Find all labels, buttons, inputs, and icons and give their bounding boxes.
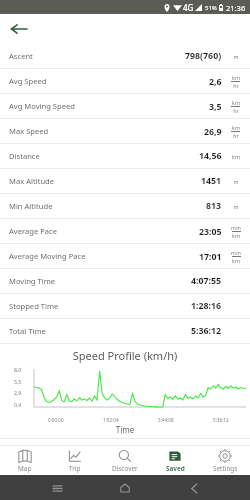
staticText: km: [232, 99, 240, 106]
staticText: Settings: [213, 464, 238, 473]
staticText: km: [232, 124, 240, 131]
button[interactable]: Trip: [50, 447, 100, 475]
staticText: km: [232, 257, 240, 264]
staticText: m: [233, 203, 239, 210]
staticText: 5:36:12: [191, 325, 222, 337]
staticText: Trip: [69, 464, 81, 473]
staticText: 14,56: [199, 150, 222, 162]
staticText: hr: [233, 107, 239, 114]
staticText: 3,5: [209, 101, 222, 113]
staticText: 1451: [201, 175, 222, 187]
staticText: Avg Speed: [9, 76, 47, 86]
staticText: 1:52:04: [103, 417, 119, 423]
staticText: 0,4: [14, 401, 22, 408]
button[interactable]: Map: [0, 447, 50, 475]
staticText: m: [233, 178, 239, 185]
staticText: Ascent: [9, 51, 33, 61]
button[interactable]: Back: [182, 476, 206, 500]
staticText: Max Speed: [9, 126, 49, 136]
staticText: Average Pace: [9, 226, 57, 236]
staticText: 5:36:12: [213, 417, 229, 423]
staticText: 798(760): [185, 50, 222, 62]
staticText: 5,5: [14, 378, 22, 385]
staticText: 23:05: [199, 226, 222, 238]
staticText: hr: [233, 132, 239, 139]
staticText: 51%: [205, 4, 217, 12]
staticText: 3:44:08: [158, 417, 174, 423]
staticText: Stopped Time: [9, 301, 59, 311]
staticText: 2,6: [209, 76, 222, 88]
staticText: Speed Profile (km/h): [0, 348, 250, 363]
staticText: min: [231, 224, 241, 231]
button[interactable]: Home: [113, 476, 137, 500]
staticText: km: [232, 153, 240, 160]
staticText: 2,9: [14, 389, 22, 396]
staticText: Total Time: [9, 326, 46, 336]
staticText: km: [232, 74, 240, 81]
staticText: Distance: [9, 151, 40, 161]
staticText: 26,9: [204, 126, 222, 138]
button[interactable]: Recent apps: [45, 476, 69, 500]
staticText: Map: [18, 464, 32, 473]
staticText: 17:01: [199, 251, 222, 263]
button[interactable]: Saved: [150, 447, 200, 475]
staticText: 0:00:00: [48, 417, 64, 423]
staticText: 4:07:55: [191, 275, 222, 287]
staticText: Moving Time: [9, 276, 56, 286]
staticText: km: [232, 232, 240, 239]
staticText: Max Altitude: [9, 176, 55, 186]
staticText: hr: [233, 82, 239, 89]
button[interactable]: Settings: [200, 447, 250, 475]
staticText: 1:28:16: [191, 300, 222, 312]
staticText: 4G: [183, 2, 194, 13]
staticText: Discover: [112, 464, 138, 473]
button[interactable]: Back: [8, 18, 30, 40]
staticText: 21:36: [226, 3, 246, 13]
staticText: m: [233, 53, 239, 60]
staticText: min: [231, 249, 241, 256]
button[interactable]: Discover: [100, 447, 150, 475]
staticText: Average Moving Pace: [9, 251, 86, 261]
staticText: 813: [206, 200, 222, 212]
staticText: Min Altitude: [9, 201, 53, 211]
staticText: 8,0: [14, 366, 22, 373]
staticText: Saved: [166, 464, 185, 473]
staticText: Avg Moving Speed: [9, 101, 75, 111]
staticText: Time: [0, 424, 250, 435]
